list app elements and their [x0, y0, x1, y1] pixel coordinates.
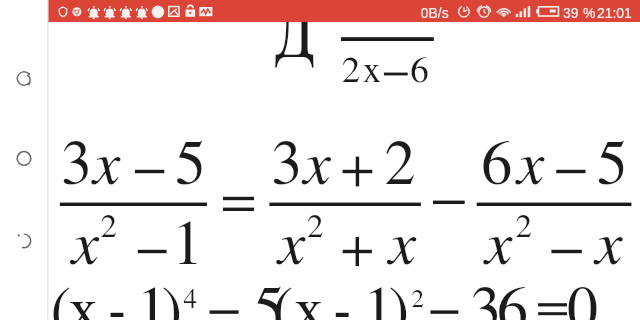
button[interactable]: Status bar [48, 0, 640, 22]
